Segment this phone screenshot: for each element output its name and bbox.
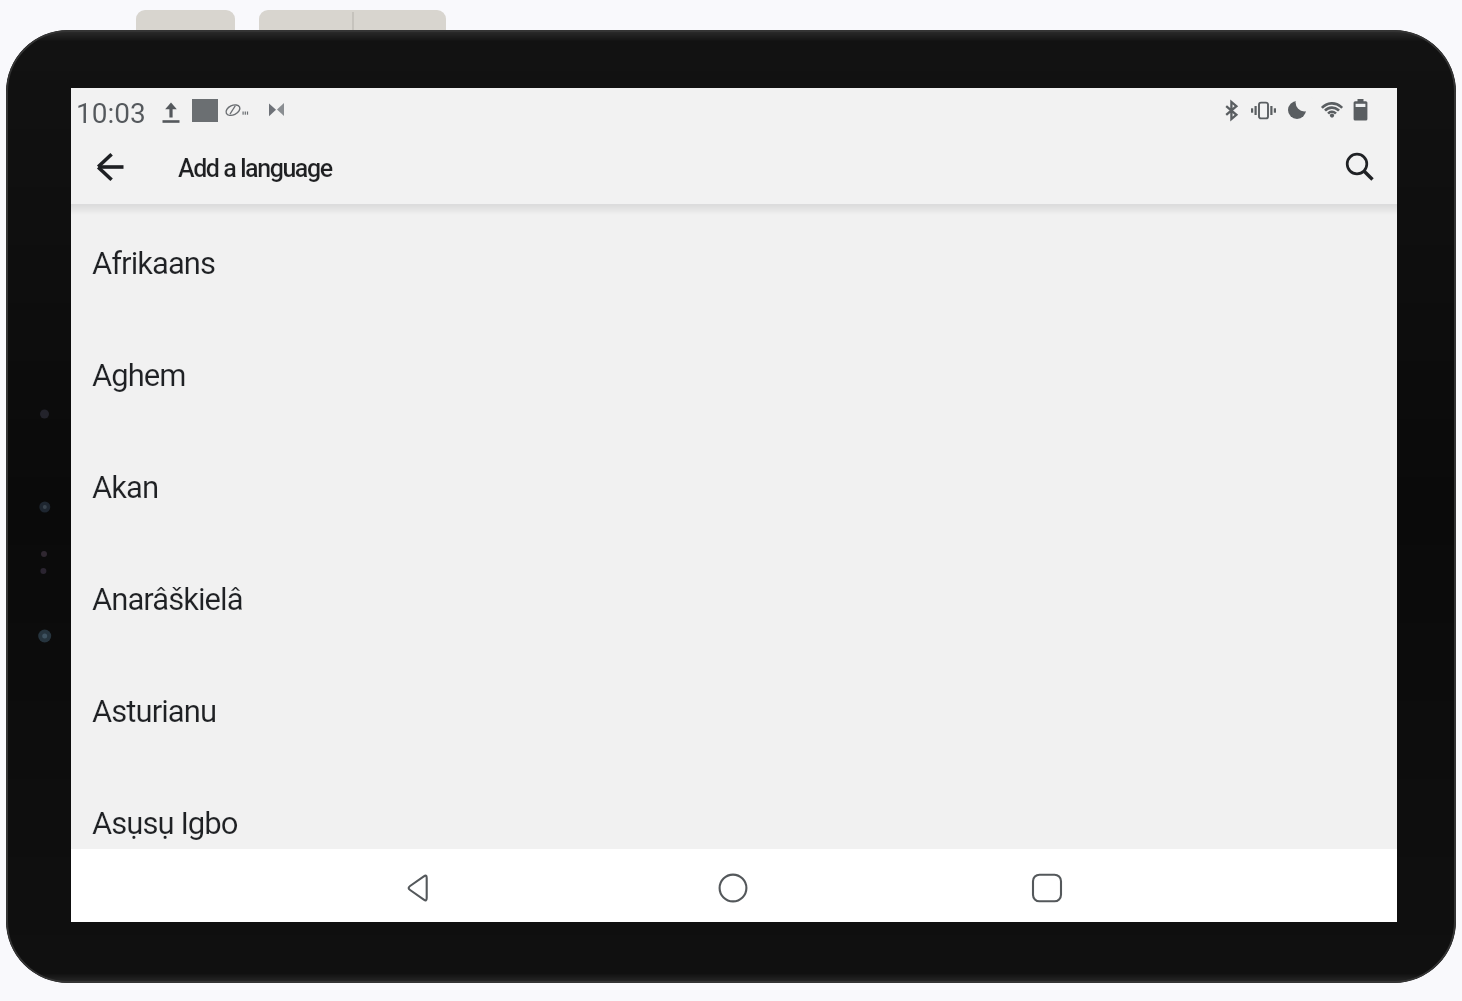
button[interactable]: Anarâškielâ xyxy=(71,543,1397,655)
button[interactable]: Afrikaans xyxy=(71,207,1397,319)
button[interactable]: Asụsụ Igbo xyxy=(71,767,1397,879)
button[interactable] xyxy=(1329,136,1385,192)
button[interactable] xyxy=(709,864,757,912)
staticText: Asụsụ Igbo xyxy=(92,805,238,841)
staticText: Akan xyxy=(92,469,159,505)
staticText: 10:03 xyxy=(76,97,146,130)
button[interactable]: Asturianu xyxy=(71,655,1397,767)
staticText: Afrikaans xyxy=(92,245,216,281)
staticText: Asturianu xyxy=(92,693,217,729)
button[interactable] xyxy=(1023,864,1071,912)
staticText: Anarâškielâ xyxy=(92,581,243,617)
button[interactable] xyxy=(393,864,441,912)
button[interactable]: Aghem xyxy=(71,319,1397,431)
button[interactable] xyxy=(86,142,136,192)
button[interactable]: Akan xyxy=(71,431,1397,543)
staticText: Aghem xyxy=(92,357,186,393)
staticText: Add a language xyxy=(178,154,332,183)
